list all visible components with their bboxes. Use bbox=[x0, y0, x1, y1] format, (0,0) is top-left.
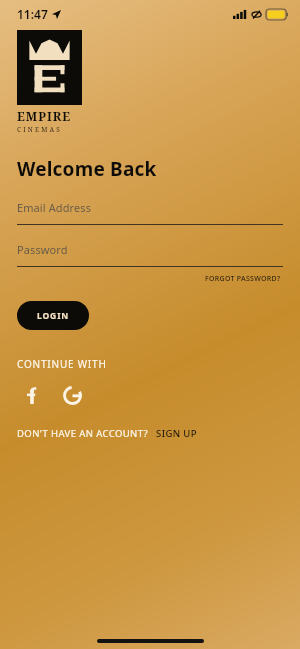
button[interactable]: Password bbox=[17, 242, 283, 267]
staticText: LOGIN bbox=[37, 310, 70, 322]
button[interactable]: FORGOT PASSWORD? bbox=[203, 272, 283, 286]
button[interactable]: Email Address bbox=[17, 200, 283, 225]
staticText: Welcome Back bbox=[17, 156, 157, 182]
button[interactable]: LOGIN bbox=[17, 301, 89, 330]
staticText: CINEMAS bbox=[17, 125, 63, 134]
staticText: Email Address bbox=[17, 200, 92, 215]
button[interactable]: SIGN UP bbox=[155, 426, 198, 441]
staticText: EMPIRE bbox=[17, 108, 72, 124]
staticText: Password bbox=[17, 242, 68, 257]
button[interactable]: Continue with Google bbox=[57, 380, 87, 410]
staticText: FORGOT PASSWORD? bbox=[205, 274, 281, 284]
staticText: 11:47 bbox=[17, 6, 48, 22]
staticText: SIGN UP bbox=[156, 427, 197, 440]
staticText: CONTINUE WITH bbox=[17, 357, 107, 371]
staticText: DON'T HAVE AN ACCOUNT? bbox=[17, 427, 149, 440]
button[interactable]: Continue with Facebook bbox=[17, 380, 47, 410]
